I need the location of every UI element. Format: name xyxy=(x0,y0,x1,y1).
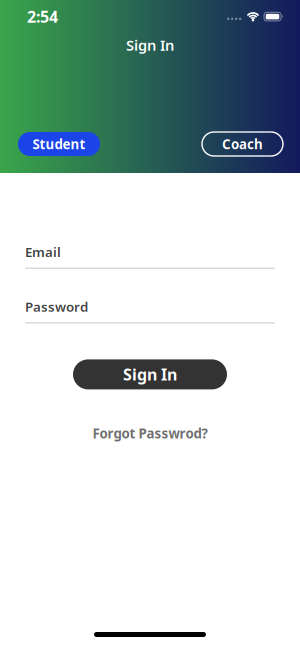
staticText: Coach xyxy=(222,135,263,153)
staticText: 2:54 xyxy=(27,6,58,27)
staticText: Password xyxy=(25,298,88,315)
button[interactable]: Coach xyxy=(202,132,283,156)
staticText: Student xyxy=(32,135,85,153)
button[interactable]: Sign In xyxy=(73,359,227,389)
button[interactable]: Forgot Passwrod? xyxy=(92,424,207,442)
staticText: Forgot Passwrod? xyxy=(92,424,207,442)
staticText: Email xyxy=(25,243,61,261)
staticText: Sign In xyxy=(126,35,174,55)
button[interactable]: Student xyxy=(18,132,100,156)
staticText: Sign In xyxy=(123,364,177,385)
